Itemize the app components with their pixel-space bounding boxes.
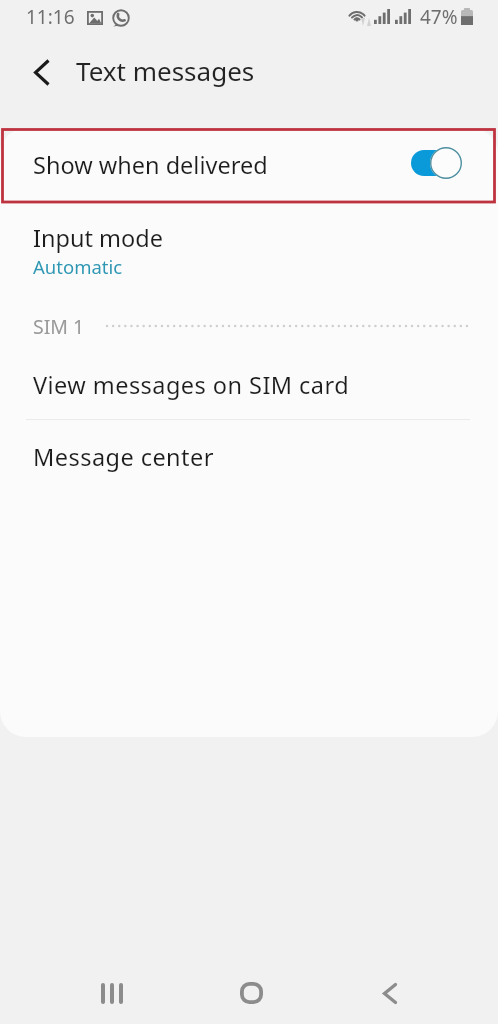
- staticText: View messages on SIM card: [33, 369, 350, 401]
- staticText: 11:16: [26, 4, 75, 30]
- staticText: Show when delivered: [33, 149, 268, 181]
- button[interactable]: Message center: [0, 420, 498, 493]
- button[interactable]: Back: [360, 963, 420, 1023]
- staticText: SIM 1: [33, 313, 85, 340]
- staticText: Input mode: [33, 222, 163, 254]
- staticText: Text messages: [76, 53, 255, 88]
- staticText: Message center: [33, 441, 214, 473]
- staticText: Automatic: [33, 254, 123, 279]
- button[interactable]: Input mode: [0, 202, 498, 298]
- button[interactable]: View messages on SIM card: [0, 350, 498, 419]
- button[interactable]: Navigate up: [21, 51, 63, 93]
- staticText: 47%: [420, 4, 458, 30]
- button[interactable]: Home: [221, 963, 281, 1023]
- button[interactable]: Recent apps: [82, 963, 142, 1023]
- button[interactable]: Show when delivered: [0, 128, 498, 202]
